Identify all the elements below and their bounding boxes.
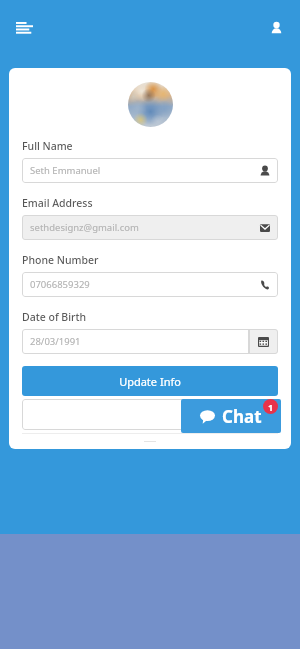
- button[interactable]: Chat: [181, 399, 281, 433]
- staticText: 07066859329: [30, 278, 260, 291]
- staticText: Full Name: [22, 139, 73, 153]
- staticText: Update Info: [119, 374, 181, 389]
- staticText: 28/03/1991: [30, 335, 81, 348]
- staticText: Seth Emmanuel: [30, 164, 260, 177]
- button[interactable]: sethdesignz@gmail.com: [22, 215, 278, 240]
- staticText: sethdesignz@gmail.com: [30, 221, 260, 234]
- button[interactable]: Account: [256, 8, 296, 48]
- staticText: Chat: [222, 405, 262, 428]
- staticText: 1: [268, 401, 274, 413]
- button[interactable]: Menu: [4, 8, 44, 48]
- staticText: Date of Birth: [22, 310, 87, 324]
- staticText: Phone Number: [22, 253, 99, 267]
- button[interactable]: 07066859329: [22, 272, 278, 297]
- button[interactable]: 28/03/1991: [22, 329, 249, 354]
- button[interactable]: Update Info: [22, 366, 278, 396]
- button[interactable]: Seth Emmanuel: [22, 158, 278, 183]
- button[interactable]: Pick date: [249, 329, 278, 354]
- staticText: Email Address: [22, 196, 93, 210]
